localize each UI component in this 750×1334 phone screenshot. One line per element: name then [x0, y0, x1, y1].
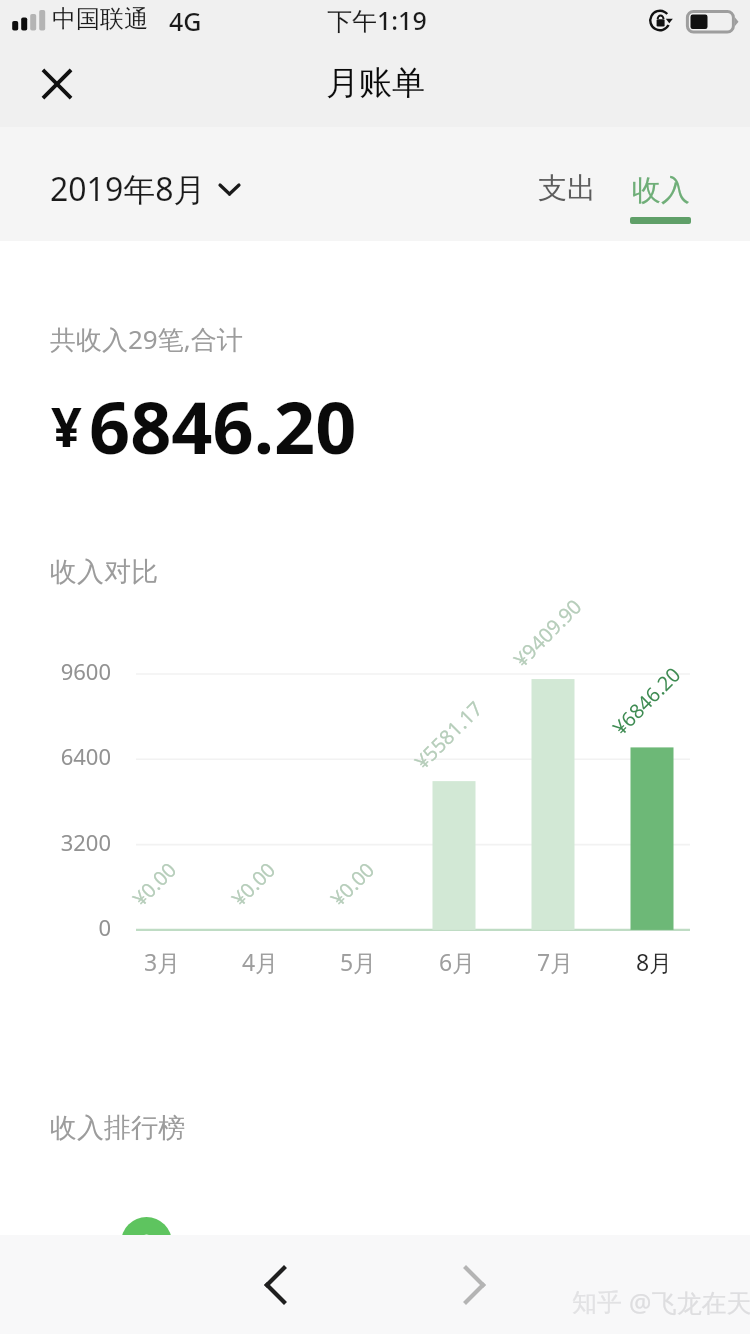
staticText: ¥: [51, 389, 82, 463]
staticText: 6846.20: [89, 377, 357, 475]
staticText: 支出: [538, 170, 596, 207]
staticText: 中国联通: [52, 4, 148, 34]
staticText: 6月: [397, 946, 517, 977]
staticText: ¥6846.20: [607, 661, 686, 740]
staticText: ¥0.00: [325, 856, 380, 911]
staticText: ¥5581.17: [409, 695, 488, 774]
staticText: ¥0.00: [127, 856, 182, 911]
staticText: ¥0.00: [226, 856, 281, 911]
button[interactable]: 微信红包: [0, 1194, 750, 1290]
staticText: 7月: [495, 946, 615, 977]
button[interactable]: Forward: [439, 1250, 509, 1320]
staticText: 收入对比: [50, 555, 158, 589]
staticText: 0: [21, 912, 111, 942]
staticText: 9600: [21, 656, 111, 686]
staticText: @飞龙在天: [629, 1285, 750, 1319]
staticText: 共收入29笔,合计: [50, 321, 243, 357]
staticText: 知乎: [572, 1287, 622, 1318]
staticText: 4G: [169, 4, 202, 38]
staticText: 3月: [102, 946, 222, 977]
staticText: 收入: [632, 172, 690, 209]
staticText: ¥9409.90: [508, 593, 587, 672]
staticText: 下午1:19: [327, 3, 427, 37]
button[interactable]: 支出: [526, 160, 608, 217]
button[interactable]: Close: [19, 46, 95, 122]
button[interactable]: 收入: [618, 152, 703, 224]
staticText: 收入排行榜: [50, 1111, 185, 1145]
staticText: 月账单: [326, 62, 425, 104]
button[interactable]: 2019年8月: [36, 157, 256, 221]
staticText: 8月: [594, 946, 714, 977]
staticText: 6400: [21, 741, 111, 771]
staticText: 微信红包: [193, 1261, 305, 1296]
staticText: 4月: [200, 946, 320, 977]
staticText: 3200: [21, 827, 111, 857]
button[interactable]: Back: [241, 1250, 311, 1320]
staticText: 2019年8月: [50, 167, 206, 211]
staticText: 5月: [298, 946, 418, 977]
